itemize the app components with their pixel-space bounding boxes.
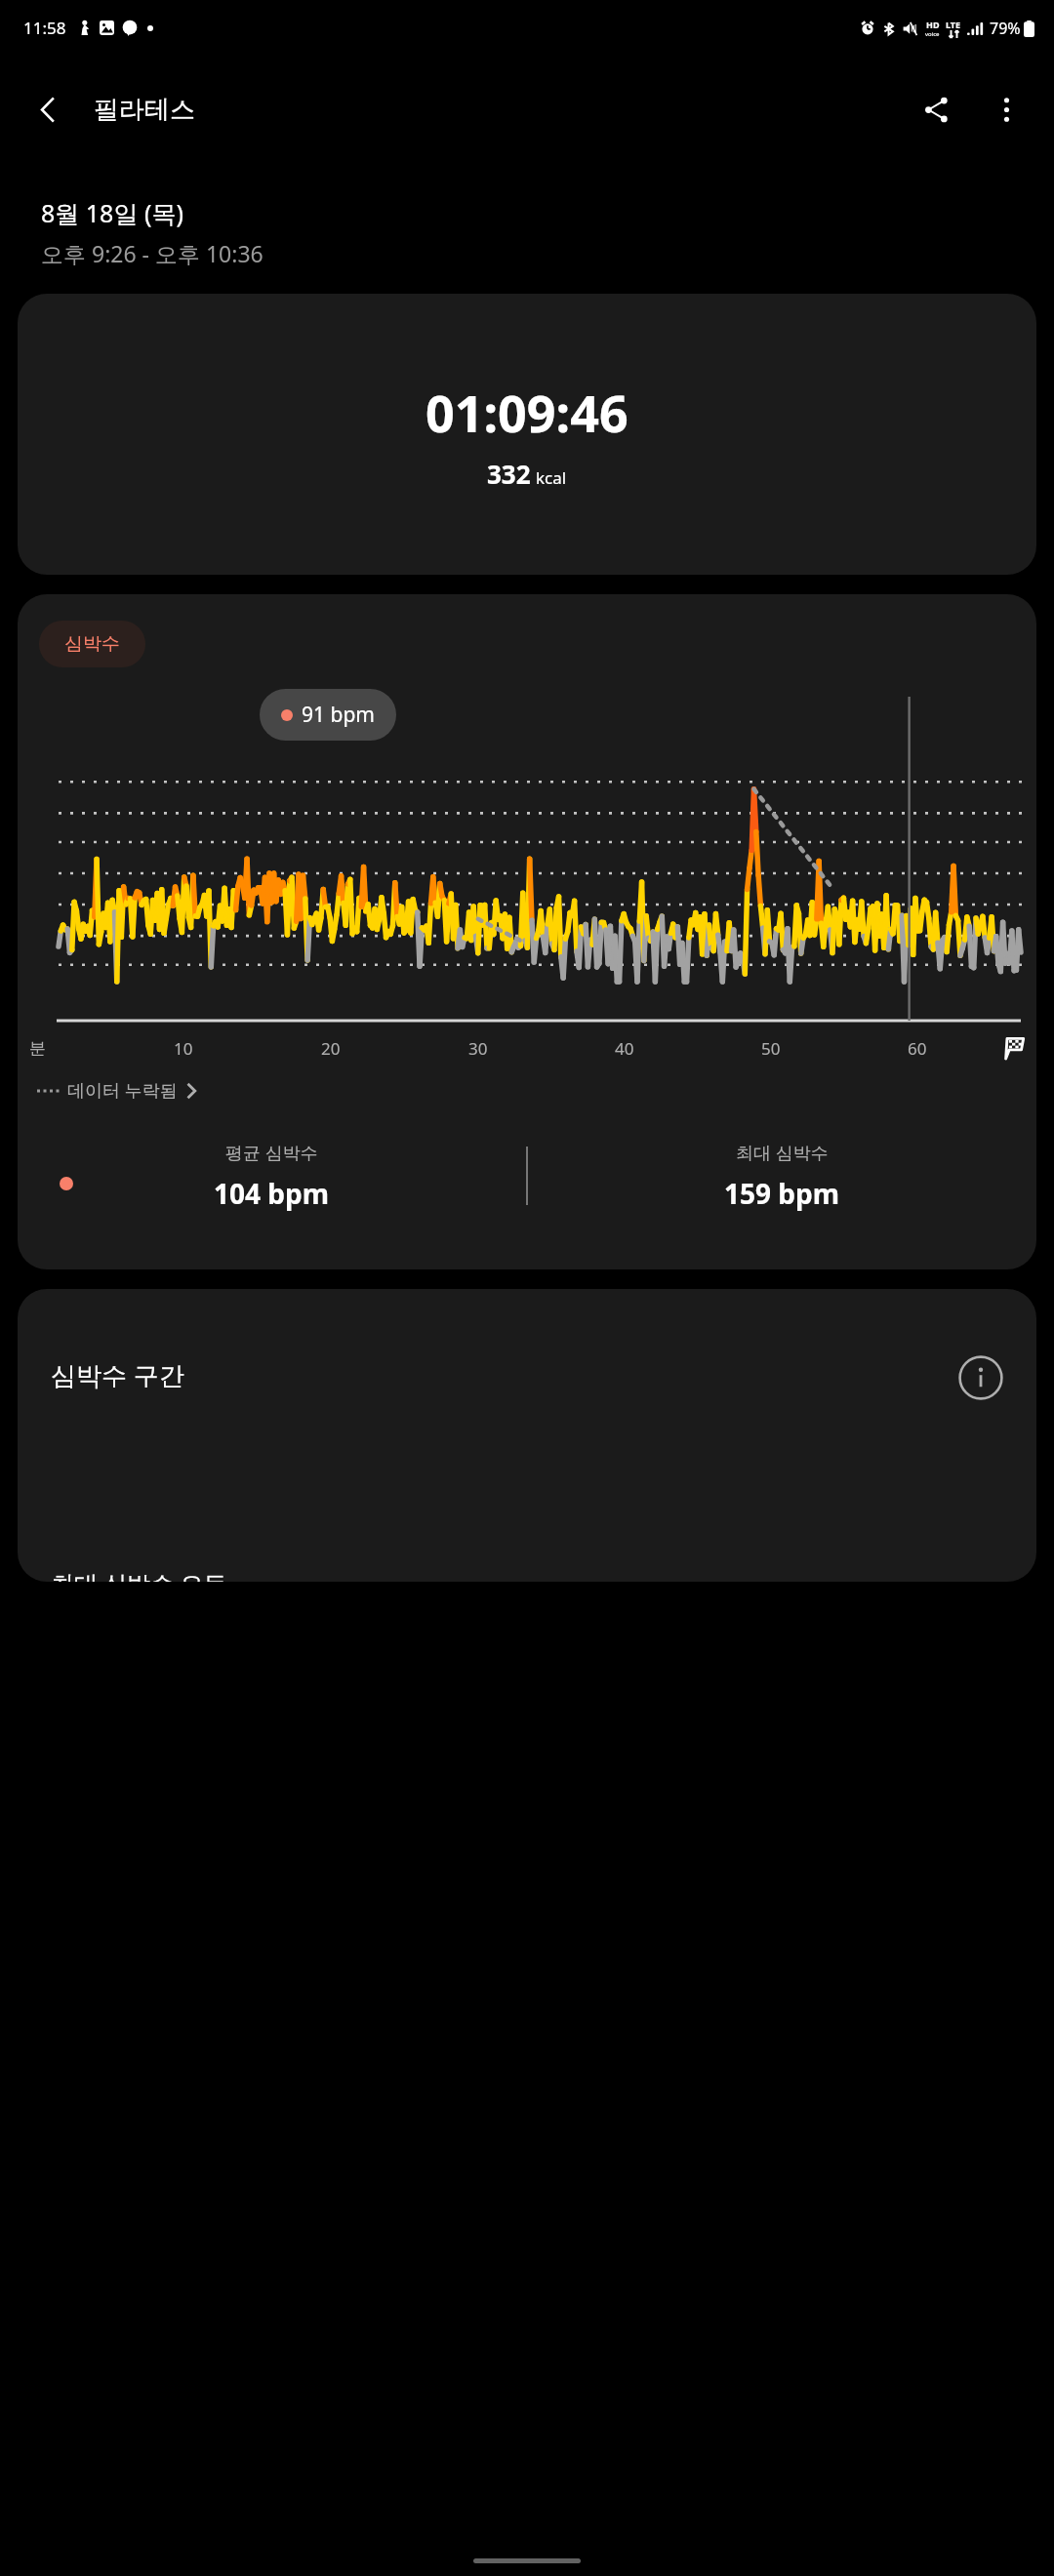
button[interactable]: 심박수 구간 xyxy=(18,1289,1036,1582)
staticText: 20 xyxy=(321,1037,341,1060)
staticText: 8월 18일 (목) xyxy=(41,196,183,229)
staticText: HD xyxy=(926,19,940,30)
staticText: 30 xyxy=(468,1037,488,1060)
staticText: 데이터 누락됨 xyxy=(67,1078,178,1103)
staticText: 60 xyxy=(908,1037,927,1060)
button[interactable]: Back xyxy=(16,77,80,141)
staticText: 01:09:46 xyxy=(426,378,628,447)
staticText: 79% xyxy=(990,18,1021,39)
staticText: 심박수 구간 xyxy=(51,1357,184,1392)
button[interactable]: Information xyxy=(953,1349,1009,1406)
button[interactable]: Share xyxy=(904,77,968,141)
staticText: 10 xyxy=(174,1037,193,1060)
staticText: 50 xyxy=(761,1037,781,1060)
button[interactable]: 데이터 누락됨 xyxy=(29,1073,204,1107)
staticText: 필라테스 xyxy=(94,94,195,126)
staticText: 심박수 xyxy=(64,632,120,656)
button[interactable]: 91 bpm xyxy=(260,689,396,741)
button[interactable]: More options xyxy=(974,77,1038,141)
staticText: 332 xyxy=(487,457,531,491)
staticText: 91 bpm xyxy=(302,701,375,729)
staticText: kcal xyxy=(536,466,567,489)
staticText: 11:58 xyxy=(23,17,66,39)
staticText: voice xyxy=(925,30,940,38)
staticText: 159 bpm xyxy=(724,1175,840,1212)
staticText: 40 xyxy=(615,1037,634,1060)
button[interactable]: 심박수 xyxy=(39,621,145,667)
staticText: 평균 심박수 xyxy=(225,1141,318,1165)
staticText: 최대 심박수 xyxy=(736,1141,829,1165)
staticText: 최대 심박수 요동 xyxy=(51,1567,227,1582)
staticText: 오후 9:26 - 오후 10:36 xyxy=(41,238,263,268)
staticText: 분 xyxy=(29,1038,46,1059)
staticText: LTE xyxy=(946,19,961,30)
button[interactable]: 01:09:46 xyxy=(18,294,1036,575)
staticText: 104 bpm xyxy=(214,1175,330,1212)
